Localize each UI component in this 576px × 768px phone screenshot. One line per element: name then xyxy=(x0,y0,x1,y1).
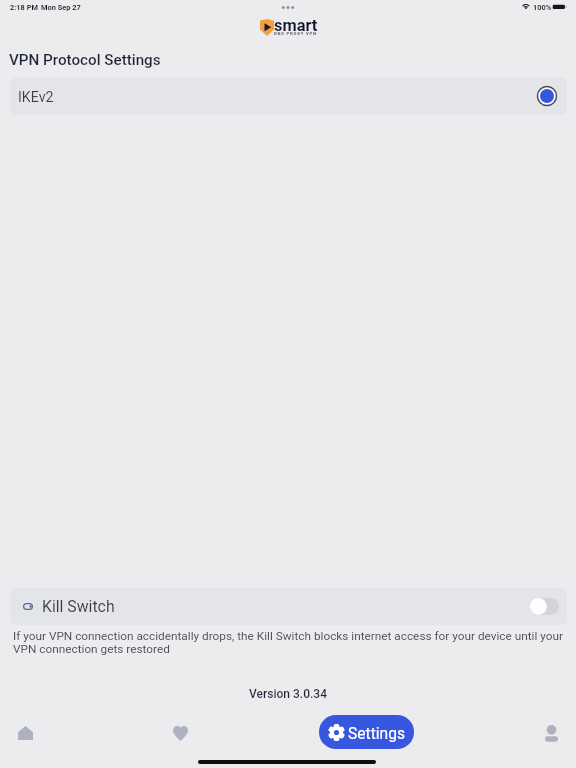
staticText: Mon Sep 27 xyxy=(41,3,81,12)
button[interactable]: Favourites xyxy=(159,716,201,750)
button[interactable]: Home xyxy=(4,716,46,750)
staticText: Kill Switch xyxy=(42,597,115,616)
button[interactable]: IKEv2 xyxy=(10,78,567,115)
button[interactable]: Kill Switch toggle, off xyxy=(531,598,559,615)
staticText: VPN Protocol Settings xyxy=(9,51,161,69)
staticText: 100% xyxy=(533,3,552,12)
button[interactable]: Settings xyxy=(319,715,414,749)
staticText: Version 3.0.34 xyxy=(0,687,576,701)
button[interactable]: Kill Switch xyxy=(10,588,567,625)
staticText: 2:18 PM xyxy=(10,3,38,12)
staticText: If your VPN connection accidentally drop… xyxy=(13,629,563,656)
button[interactable]: Profile xyxy=(530,716,572,750)
staticText: Settings xyxy=(348,725,405,743)
staticText: smart xyxy=(274,16,318,35)
staticText: IKEv2 xyxy=(18,89,54,106)
staticText: DNS PROXY VPN xyxy=(274,31,317,36)
